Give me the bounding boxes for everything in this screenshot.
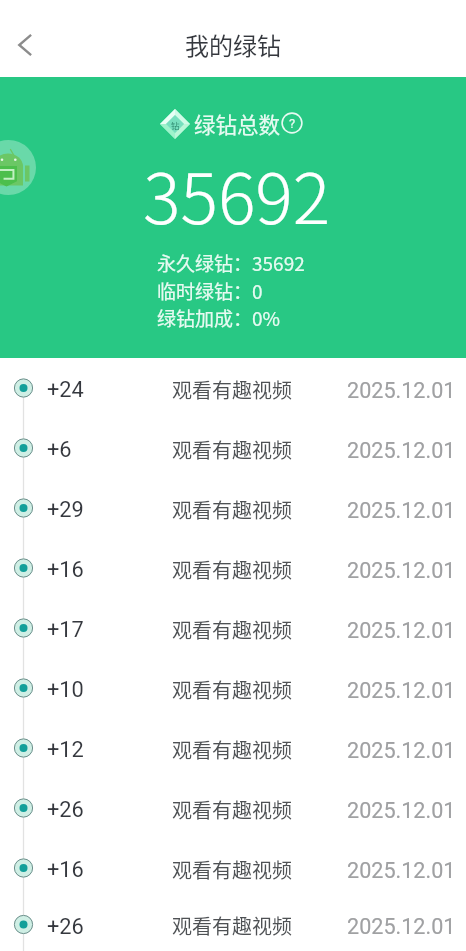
staticText: +29 — [47, 497, 84, 523]
staticText: +10 — [47, 677, 84, 703]
staticText: 永久绿钻：35692 — [157, 249, 305, 277]
button[interactable]: +10 — [0, 658, 466, 718]
staticText: ? — [289, 116, 296, 131]
button[interactable]: +16 — [0, 838, 466, 898]
staticText: +26 — [47, 914, 84, 940]
staticText: 观看有趣视频 — [172, 855, 292, 884]
staticText: 观看有趣视频 — [172, 675, 292, 704]
staticText: +12 — [47, 737, 84, 763]
staticText: 观看有趣视频 — [172, 795, 292, 824]
staticText: 绿钻总数 — [194, 108, 281, 139]
staticText: 观看有趣视频 — [172, 495, 292, 524]
staticText: +17 — [47, 617, 84, 643]
staticText: +16 — [47, 557, 84, 583]
staticText: 观看有趣视频 — [172, 911, 292, 940]
staticText: 观看有趣视频 — [172, 615, 292, 644]
staticText: 观看有趣视频 — [172, 375, 292, 404]
staticText: 观看有趣视频 — [172, 735, 292, 764]
staticText: 2025.12.01 — [347, 438, 456, 463]
staticText: 2025.12.01 — [347, 798, 456, 823]
button[interactable]: +26 — [0, 778, 466, 838]
staticText: +16 — [47, 857, 84, 883]
staticText: 2025.12.01 — [347, 498, 456, 523]
staticText: 2025.12.01 — [347, 858, 456, 883]
staticText: 绿钻加成：0% — [157, 304, 281, 332]
staticText: 2025.12.01 — [347, 914, 456, 939]
button[interactable]: Help — [281, 112, 303, 134]
button[interactable]: +26 — [0, 898, 466, 951]
button[interactable]: Back — [1, 21, 49, 69]
staticText: 2025.12.01 — [347, 558, 456, 583]
button[interactable]: +12 — [0, 718, 466, 778]
staticText: 35692 — [143, 143, 331, 244]
staticText: 2025.12.01 — [347, 678, 456, 703]
button[interactable]: +6 — [0, 418, 466, 478]
staticText: +26 — [47, 797, 84, 823]
staticText: 2025.12.01 — [347, 378, 456, 403]
staticText: 2025.12.01 — [347, 738, 456, 763]
button[interactable]: +24 — [0, 358, 466, 418]
button[interactable]: +17 — [0, 598, 466, 658]
staticText: 2025.12.01 — [347, 618, 456, 643]
staticText: 临时绿钻：0 — [157, 277, 263, 305]
staticText: 钻 — [171, 119, 180, 131]
staticText: +6 — [47, 437, 72, 463]
button[interactable]: +16 — [0, 538, 466, 598]
button[interactable]: +29 — [0, 478, 466, 538]
staticText: 观看有趣视频 — [172, 555, 292, 584]
button[interactable]: Avatar — [0, 140, 36, 195]
staticText: 我的绿钻 — [185, 27, 281, 62]
staticText: 观看有趣视频 — [172, 435, 292, 464]
staticText: +24 — [47, 377, 84, 403]
